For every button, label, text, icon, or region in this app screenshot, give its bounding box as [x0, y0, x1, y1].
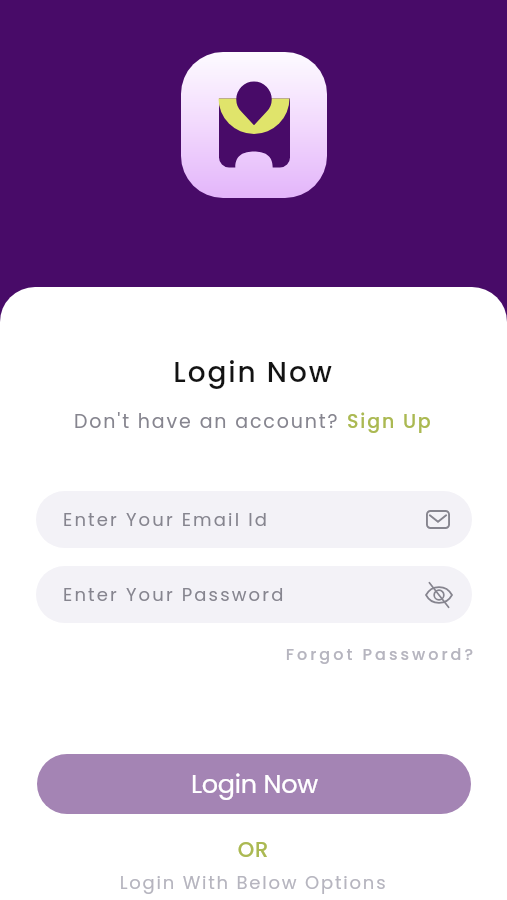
button[interactable]: Enter Your Email Id	[36, 491, 472, 548]
button[interactable]: Forgot Password?	[0, 643, 476, 665]
staticText: OR	[0, 835, 507, 864]
button[interactable]: Login Now	[37, 754, 471, 814]
other: Show password	[426, 584, 452, 606]
staticText: Don't have an account?	[74, 408, 347, 435]
staticText: Login Now	[191, 766, 318, 802]
button[interactable]: Enter Your Password	[36, 566, 472, 623]
staticText: Enter Your Email Id	[63, 507, 426, 532]
staticText: Login With Below Options	[0, 870, 507, 895]
staticText: Login Now	[0, 353, 507, 392]
staticText: Enter Your Password	[63, 582, 426, 607]
other: Email	[426, 510, 450, 529]
button[interactable]: Sign Up	[347, 408, 433, 435]
